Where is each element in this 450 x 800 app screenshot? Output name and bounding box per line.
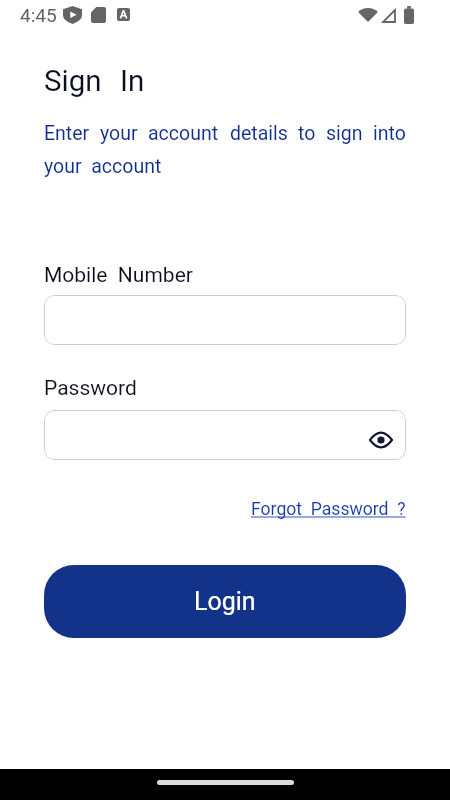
staticText: Sign xyxy=(44,64,102,99)
staticText: to xyxy=(298,122,316,145)
staticText: Mobile Number xyxy=(44,263,193,288)
button[interactable]: Forgot Password ? xyxy=(251,499,406,520)
staticText: In xyxy=(120,64,145,99)
staticText: sign xyxy=(326,122,363,145)
staticText: account xyxy=(148,122,219,145)
staticText: your xyxy=(100,122,138,145)
button[interactable] xyxy=(44,410,406,460)
staticText: into xyxy=(373,122,406,145)
staticText: details xyxy=(230,122,288,145)
button[interactable] xyxy=(44,295,406,345)
staticText: 4:45 xyxy=(20,4,57,26)
button[interactable]: Login xyxy=(44,565,406,638)
staticText: Login xyxy=(194,587,256,616)
staticText: your account xyxy=(44,155,162,178)
staticText: Password xyxy=(44,376,137,401)
staticText: Enter xyxy=(44,122,90,145)
